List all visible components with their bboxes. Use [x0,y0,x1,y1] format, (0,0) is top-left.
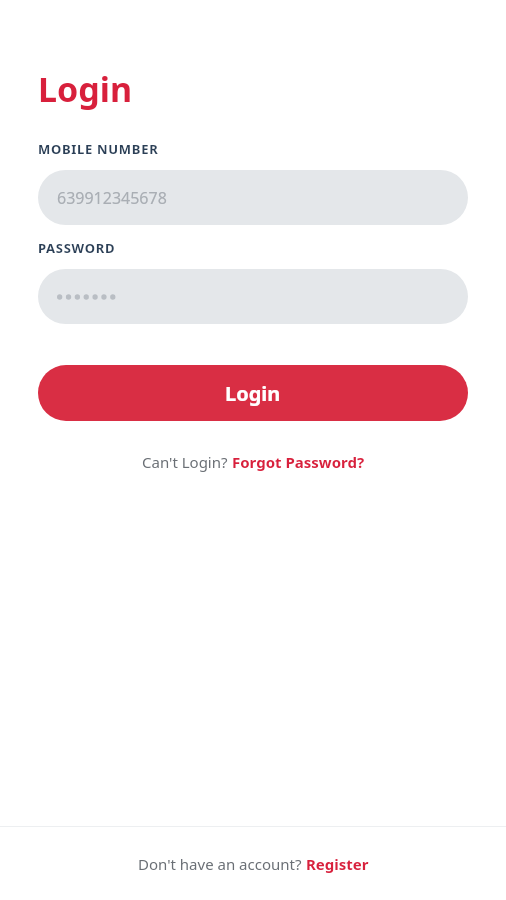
button[interactable]: Forgot Password? [232,452,365,472]
staticText: Don't have an account? [138,854,306,874]
button[interactable]: Register [306,854,369,874]
staticText: PASSWORD [38,239,116,257]
staticText: 639912345678 [57,187,167,209]
button[interactable]: Login [38,365,468,421]
staticText: MOBILE NUMBER [38,140,159,158]
staticText: Login [225,380,281,407]
staticText: Login [38,66,133,112]
button[interactable]: Password [38,269,468,324]
staticText: Forgot Password? [232,452,365,472]
other: Password [57,290,119,304]
button[interactable]: 639912345678 [38,170,468,225]
staticText: Can't Login? [142,452,232,472]
staticText: Register [306,854,369,874]
